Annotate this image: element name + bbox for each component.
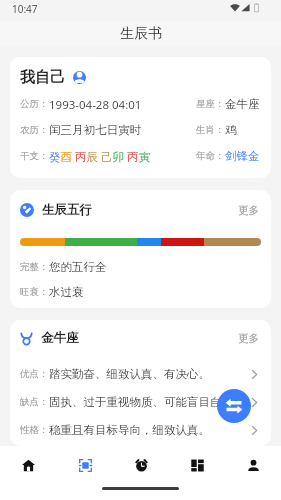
staticText: 更多 — [238, 332, 259, 345]
staticText: 旺衰： — [20, 286, 49, 298]
button[interactable]: 更多 — [236, 201, 261, 220]
staticText: 缺点： — [20, 396, 49, 408]
staticText: 星座： — [196, 98, 225, 110]
staticText: 稳重且有目标导向，细致认真。 — [49, 423, 252, 437]
button[interactable]: 更多 — [236, 329, 261, 348]
staticText: 年命： — [196, 150, 225, 162]
staticText: 剑锋金 — [225, 149, 260, 163]
staticText: 水过衰 — [49, 285, 84, 299]
staticText: 生辰书 — [120, 25, 162, 43]
button[interactable]: 缺点： — [20, 395, 261, 409]
button[interactable]: Scan — [57, 446, 113, 484]
staticText: 我自己 — [20, 68, 65, 87]
staticText: 完整： — [20, 261, 49, 273]
staticText: 优点： — [20, 368, 49, 380]
button[interactable]: 性格： — [20, 423, 261, 437]
button[interactable]: Alarm — [113, 446, 169, 484]
staticText: 生肖： — [196, 124, 225, 136]
staticText: 性格： — [20, 424, 49, 436]
staticText: 癸酉 丙辰 己卯 丙寅 — [49, 149, 150, 163]
button[interactable]: Dashboard — [169, 446, 225, 484]
staticText: 闰三月初七日寅时 — [49, 123, 141, 137]
button[interactable]: Switch person — [217, 389, 251, 423]
staticText: 您的五行全 — [49, 260, 107, 274]
staticText: 鸡 — [225, 123, 237, 137]
staticText: 金牛座 — [41, 330, 79, 346]
staticText: 农历： — [20, 124, 49, 136]
staticText: 10:47 — [12, 2, 38, 16]
staticText: 公历： — [20, 98, 49, 110]
button[interactable]: Home — [0, 446, 57, 484]
button[interactable]: Profile avatar — [73, 71, 86, 84]
staticText: 生辰五行 — [42, 202, 92, 218]
staticText: 踏实勤奋、细致认真、有决心。 — [49, 367, 252, 381]
staticText: 固执、过于重视物质、可能盲目自信。 — [49, 395, 252, 409]
button[interactable]: Profile — [225, 446, 281, 484]
staticText: 金牛座 — [225, 97, 260, 111]
staticText: 更多 — [238, 204, 259, 217]
staticText: 1993-04-28 04:01 — [49, 97, 142, 111]
button[interactable]: 优点： — [20, 367, 261, 381]
staticText: 干支： — [20, 150, 49, 162]
